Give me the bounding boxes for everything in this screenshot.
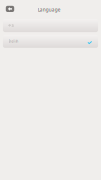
button[interactable]: 中文 <box>3 19 98 32</box>
staticText: Language <box>38 7 61 13</box>
button[interactable]: Back <box>6 6 14 12</box>
button[interactable]: English <box>3 35 98 48</box>
staticText: English <box>9 39 19 43</box>
staticText: 中文 <box>9 24 15 27</box>
